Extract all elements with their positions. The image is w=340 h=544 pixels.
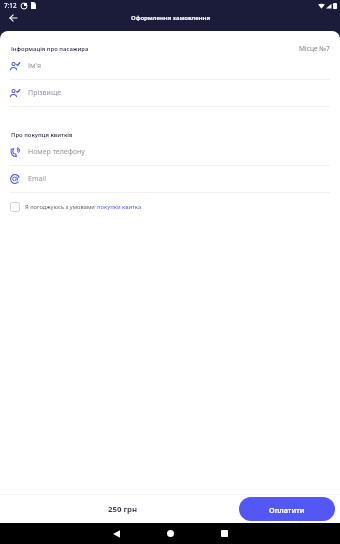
staticText: 250 грн [108, 504, 138, 515]
button[interactable]: Recents [211, 523, 237, 544]
staticText: Номер телефону [28, 147, 85, 157]
button[interactable]: Я погоджуюсь з умовами [10, 202, 340, 212]
staticText: Інформація про пасажира [11, 45, 89, 53]
button[interactable]: Ім'я [0, 53, 340, 80]
staticText: 7:12 [4, 1, 17, 10]
button[interactable]: покупки квитка [97, 203, 142, 211]
button[interactable]: Back [103, 523, 129, 544]
staticText: Прізвище [28, 88, 62, 98]
staticText: Оформлення замовлення [131, 14, 210, 22]
button[interactable]: Прізвище [0, 80, 340, 107]
staticText: Про покупця квитків [11, 131, 73, 139]
button[interactable]: Home [157, 523, 183, 544]
button[interactable]: Оплатити [239, 497, 335, 521]
staticText: Місце №7 [299, 44, 330, 53]
button[interactable]: Номер телефону [0, 139, 340, 166]
staticText: Оплатити [269, 505, 305, 515]
button[interactable]: Email [0, 166, 340, 193]
button[interactable]: Back [4, 9, 22, 27]
staticText: Email [28, 174, 46, 184]
staticText: Я погоджуюсь з умовами [25, 203, 97, 211]
staticText: Ім'я [28, 61, 41, 71]
